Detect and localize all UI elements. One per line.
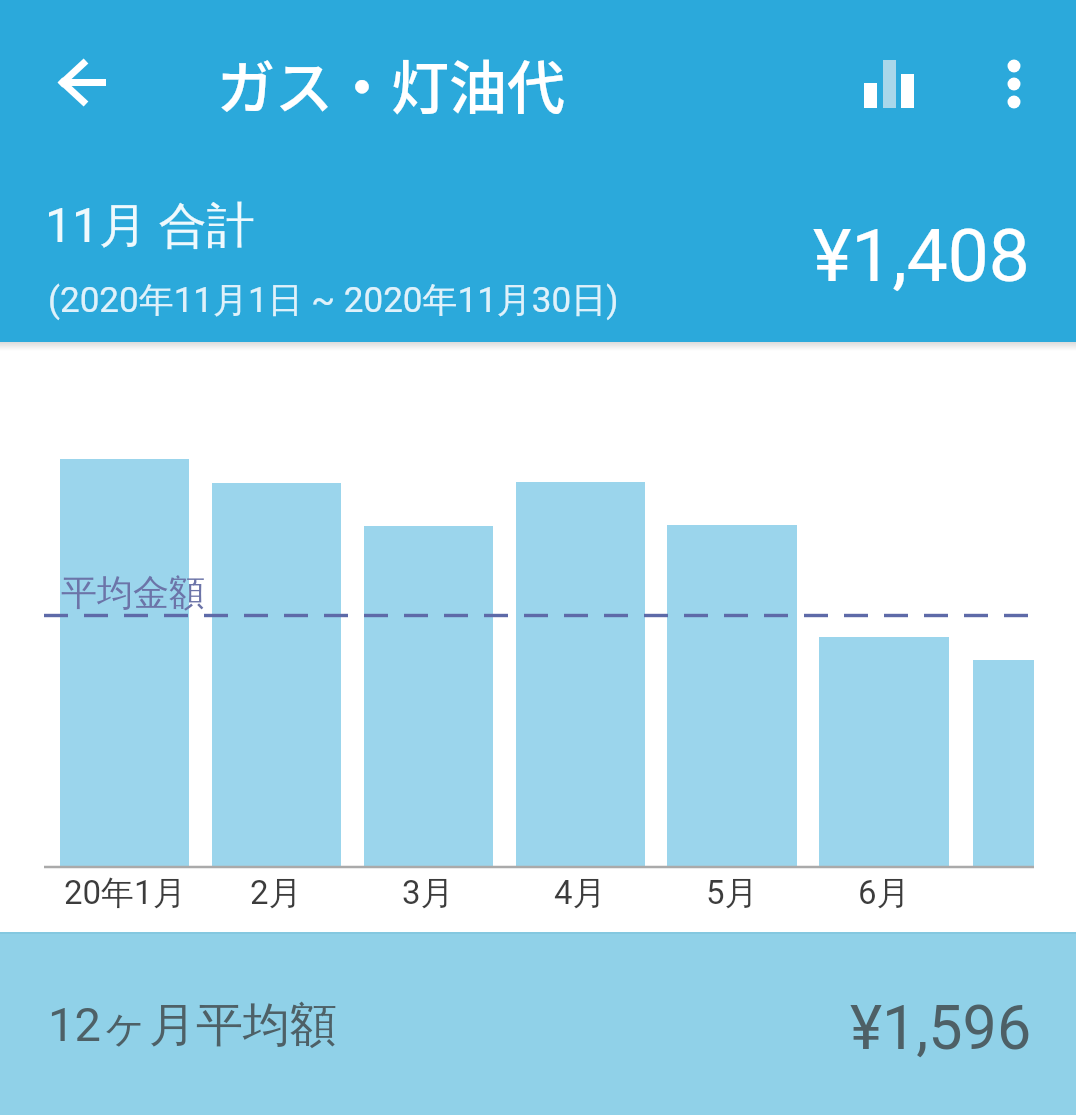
staticText: 11月 合計 <box>45 196 255 256</box>
staticText: 20年1月 <box>64 872 186 914</box>
button[interactable] <box>46 46 122 122</box>
staticText: ¥1,408 <box>813 213 1030 299</box>
staticText: 6月 <box>858 872 910 914</box>
staticText: 平均金額 <box>61 570 205 615</box>
staticText: 2月 <box>250 872 302 914</box>
button[interactable]: 12ヶ月平均額 <box>0 932 1076 1115</box>
button[interactable] <box>988 58 1040 110</box>
staticText: 3月 <box>402 872 454 914</box>
staticText: (2020年11月1日 ~ 2020年11月30日) <box>48 278 619 322</box>
staticText: 4月 <box>554 872 606 914</box>
staticText: 12ヶ月平均額 <box>48 996 337 1055</box>
button[interactable] <box>850 46 926 122</box>
staticText: ¥1,596 <box>850 992 1032 1063</box>
staticText: ガス・灯油代 <box>217 42 566 126</box>
staticText: 5月 <box>706 872 758 914</box>
